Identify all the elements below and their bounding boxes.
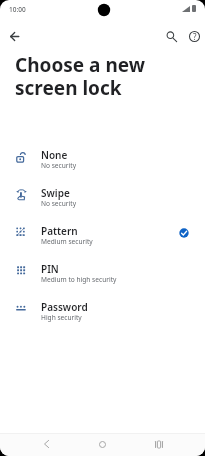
staticText: High security bbox=[41, 313, 82, 322]
staticText: ? bbox=[193, 31, 197, 42]
staticText: No security bbox=[41, 199, 76, 208]
staticText: None bbox=[41, 148, 68, 162]
button[interactable]: Pattern bbox=[0, 220, 205, 258]
button[interactable]: Swipe bbox=[0, 182, 205, 220]
staticText: Medium security bbox=[41, 237, 93, 246]
staticText: Pattern bbox=[41, 224, 78, 238]
button[interactable]: Password bbox=[0, 296, 205, 334]
staticText: Choose a new screen lock bbox=[15, 52, 146, 101]
staticText: Swipe bbox=[41, 186, 70, 200]
button[interactable]: None bbox=[0, 144, 205, 182]
staticText: No security bbox=[41, 161, 76, 170]
button[interactable]: Back bbox=[33, 431, 59, 456]
staticText: 10:00 bbox=[9, 5, 26, 14]
button[interactable]: Recent apps bbox=[146, 431, 172, 456]
button[interactable]: Home bbox=[89, 431, 115, 456]
button[interactable]: Help bbox=[181, 23, 205, 49]
button[interactable]: PIN bbox=[0, 258, 205, 296]
button[interactable]: Search bbox=[158, 23, 184, 49]
button[interactable]: Back bbox=[1, 23, 27, 49]
staticText: Password bbox=[41, 300, 88, 314]
staticText: Medium to high security bbox=[41, 275, 117, 284]
staticText: PIN bbox=[41, 262, 59, 276]
